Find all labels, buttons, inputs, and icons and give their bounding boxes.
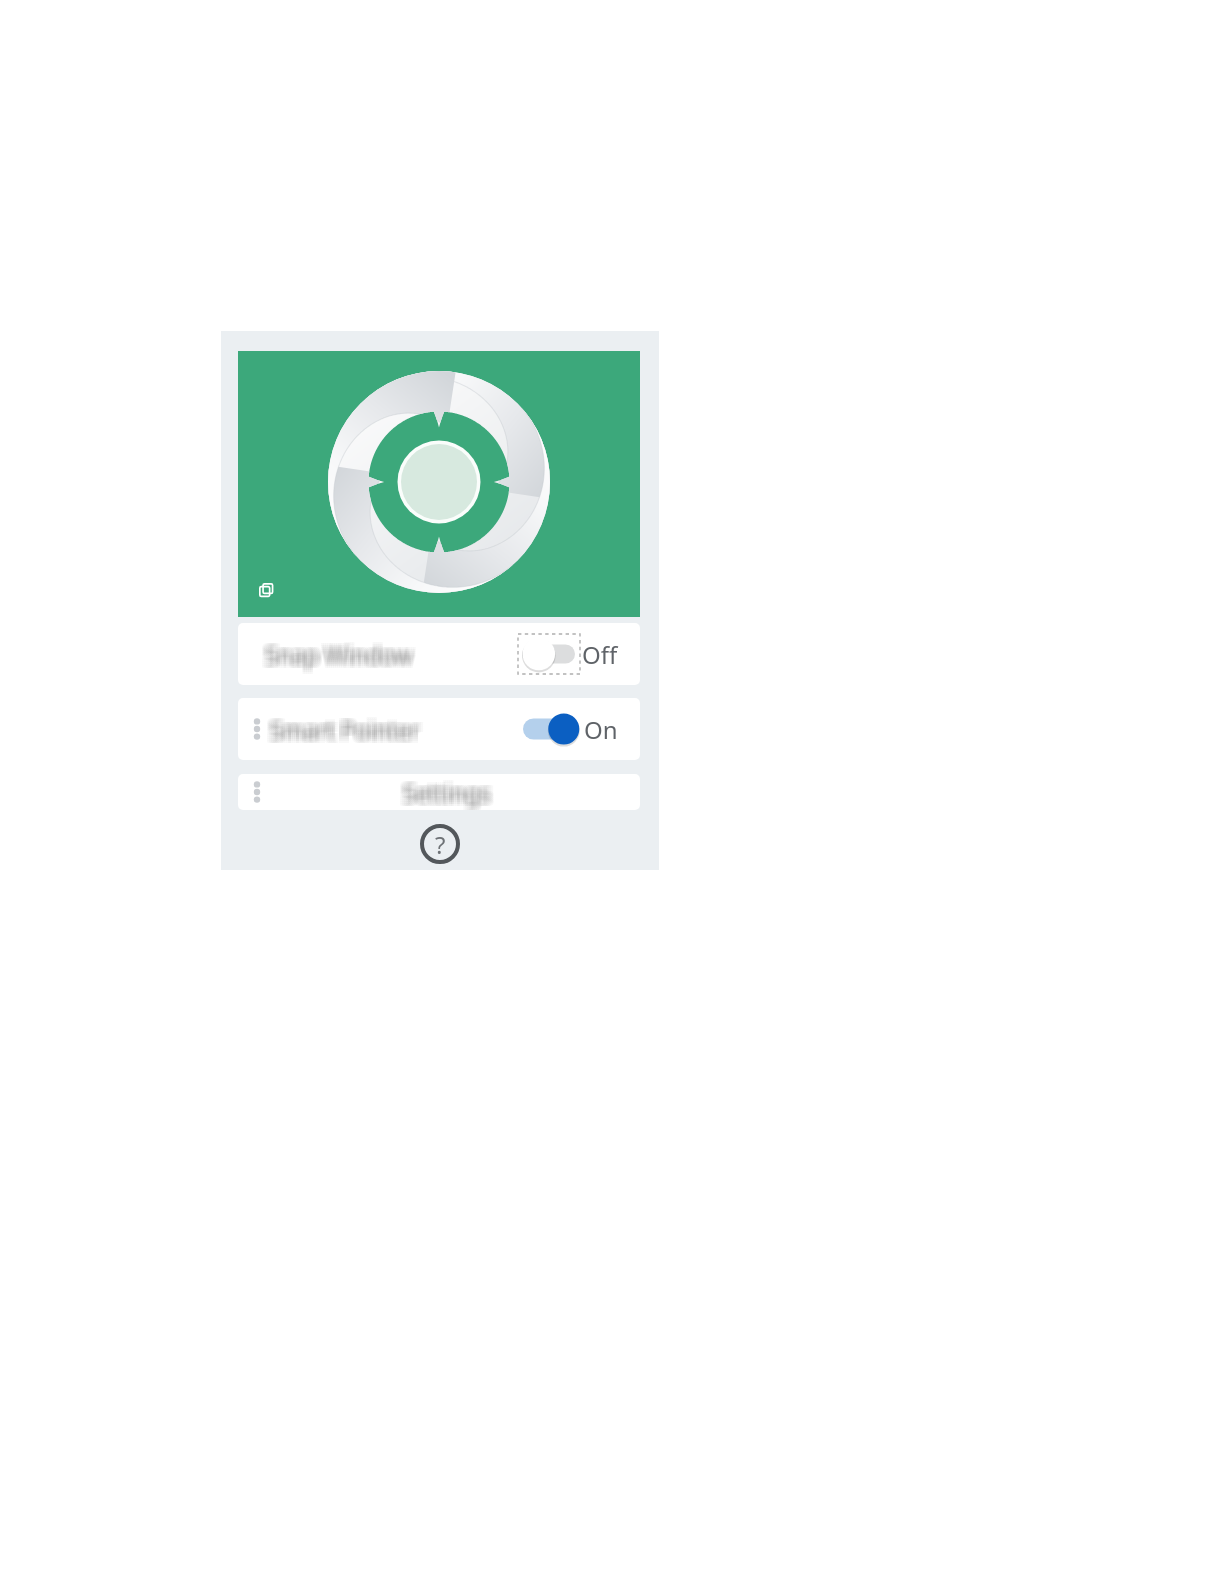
staticText: Smart Pointer [268, 710, 418, 741]
staticText: Settings [401, 775, 489, 806]
staticText: Settings [405, 774, 493, 804]
staticText: Snap Window [265, 641, 413, 672]
staticText: Smart Pointer [274, 714, 424, 745]
staticText: Smart Pointer [270, 712, 420, 743]
staticText: Snap Window [263, 641, 411, 672]
staticText: Settings [407, 781, 495, 810]
staticText: Snap Window [263, 643, 411, 674]
staticText: Settings [405, 775, 493, 806]
staticText: Snap Window [265, 635, 413, 666]
staticText: Settings [403, 775, 491, 806]
staticText: Snap Window [261, 643, 409, 674]
staticText: Settings [403, 777, 491, 808]
staticText: Smart Pointer [272, 718, 422, 749]
staticText: Snap Window [269, 637, 417, 668]
staticText: Smart Pointer [266, 718, 416, 749]
staticText: Settings [401, 774, 489, 804]
staticText: Snap Window [263, 635, 411, 666]
staticText: Smart Pointer [270, 710, 420, 741]
staticText: Settings [405, 781, 493, 810]
staticText: Settings [399, 779, 487, 810]
staticText: Snap Window [267, 635, 415, 666]
staticText: Snap Window [265, 643, 413, 674]
button[interactable] [518, 634, 580, 674]
staticText: Snap Window [267, 637, 415, 668]
staticText: Settings [407, 777, 495, 808]
staticText: Snap Window [263, 639, 411, 670]
staticText: Settings [405, 777, 493, 808]
staticText: Smart Pointer [270, 716, 420, 747]
staticText: Settings [399, 775, 487, 806]
staticText: Smart Pointer [266, 710, 416, 741]
button[interactable] [520, 709, 582, 749]
button[interactable]: Snap Window [238, 623, 640, 685]
staticText: Settings [399, 774, 487, 804]
staticText: Settings [405, 779, 493, 810]
staticText: Smart Pointer [266, 716, 416, 747]
staticText: Smart Pointer [268, 712, 418, 743]
staticText: Smart Pointer [272, 714, 422, 745]
staticText: Smart Pointer [274, 718, 424, 749]
staticText: Settings [403, 779, 491, 810]
button[interactable]: Duplicate window [259, 583, 273, 597]
staticText: Snap Window [261, 637, 409, 668]
staticText: Snap Window [269, 639, 417, 670]
staticText: Smart Pointer [266, 714, 416, 745]
staticText: Snap Window [261, 639, 409, 670]
staticText: Settings [407, 775, 495, 806]
staticText: Settings [403, 774, 491, 804]
staticText: Snap Window [269, 643, 417, 674]
staticText: Smart Pointer [272, 716, 422, 747]
button[interactable]: Help [420, 824, 460, 864]
staticText: Settings [401, 777, 489, 808]
staticText: Smart Pointer [274, 716, 424, 747]
staticText: Settings [407, 779, 495, 810]
staticText: Settings [401, 781, 489, 810]
staticText: Smart Pointer [268, 718, 418, 749]
staticText: Settings [401, 779, 489, 810]
staticText: ? [435, 828, 446, 861]
staticText: Snap Window [267, 639, 415, 670]
staticText: Settings [399, 777, 487, 808]
staticText: Snap Window [269, 641, 417, 672]
staticText: Smart Pointer [270, 714, 420, 745]
staticText: Smart Pointer [274, 710, 424, 741]
staticText: Snap Window [267, 641, 415, 672]
button[interactable]: Smart Pointer [238, 698, 640, 760]
staticText: Snap Window [261, 641, 409, 672]
button[interactable]: Settings [238, 774, 640, 810]
staticText: On [584, 713, 618, 746]
staticText: Smart Pointer [272, 712, 422, 743]
staticText: Snap Window [265, 639, 413, 670]
staticText: Smart Pointer [268, 714, 418, 745]
staticText: Settings [407, 774, 495, 804]
staticText: Snap Window [261, 635, 409, 666]
staticText: Smart Pointer [274, 712, 424, 743]
staticText: Smart Pointer [270, 718, 420, 749]
staticText: Smart Pointer [268, 716, 418, 747]
staticText: Settings [399, 781, 487, 810]
staticText: Smart Pointer [272, 710, 422, 741]
staticText: Snap Window [263, 637, 411, 668]
staticText: Off [582, 638, 618, 671]
staticText: Snap Window [269, 635, 417, 666]
staticText: Settings [403, 781, 491, 810]
staticText: Snap Window [265, 637, 413, 668]
staticText: Smart Pointer [266, 712, 416, 743]
staticText: Snap Window [267, 643, 415, 674]
